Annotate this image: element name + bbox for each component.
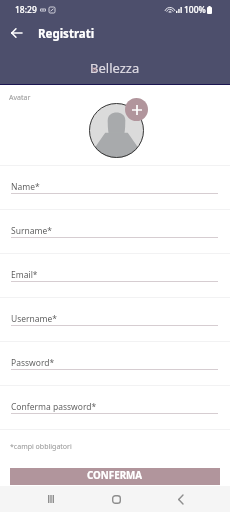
staticText: Name*: [11, 181, 40, 193]
button[interactable]: Back: [160, 486, 200, 512]
staticText: Registrati: [38, 26, 95, 42]
button[interactable]: Name*: [0, 165, 230, 209]
staticText: 18:29: [15, 4, 37, 16]
staticText: Avatar: [9, 93, 31, 103]
staticText: Username*: [11, 313, 58, 325]
button[interactable]: Recents: [31, 486, 71, 512]
button[interactable]: Add photo: [125, 98, 148, 121]
staticText: Password*: [11, 357, 55, 369]
button[interactable]: Avatar: [89, 103, 144, 158]
staticText: CONFERMA: [87, 469, 143, 482]
button[interactable]: CONFERMA: [10, 468, 220, 485]
button[interactable]: Conferma password*: [0, 385, 230, 429]
button[interactable]: Home: [96, 486, 136, 512]
staticText: Surname*: [11, 225, 52, 237]
button[interactable]: Username*: [0, 297, 230, 341]
staticText: 100%: [184, 4, 206, 16]
staticText: Conferma password*: [11, 401, 97, 413]
staticText: Email*: [11, 269, 38, 281]
button[interactable]: Back: [5, 22, 27, 44]
button[interactable]: Surname*: [0, 209, 230, 253]
staticText: *campi obbligatori: [10, 442, 72, 452]
button[interactable]: Password*: [0, 341, 230, 385]
staticText: Bellezza: [90, 59, 140, 77]
button[interactable]: Email*: [0, 253, 230, 297]
